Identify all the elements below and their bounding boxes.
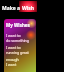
button[interactable]: My Wishes: [4, 19, 36, 72]
staticText: running great: [6, 50, 29, 55]
staticText: I want: [6, 62, 17, 67]
staticText: enough: [6, 57, 19, 62]
staticText: Make a: [2, 5, 22, 12]
staticText: do something: [6, 38, 29, 43]
staticText: My Wishes: [6, 22, 30, 28]
staticText: I want to: [6, 33, 21, 38]
staticText: Wish: [22, 5, 35, 12]
staticText: I want to: [6, 45, 21, 50]
